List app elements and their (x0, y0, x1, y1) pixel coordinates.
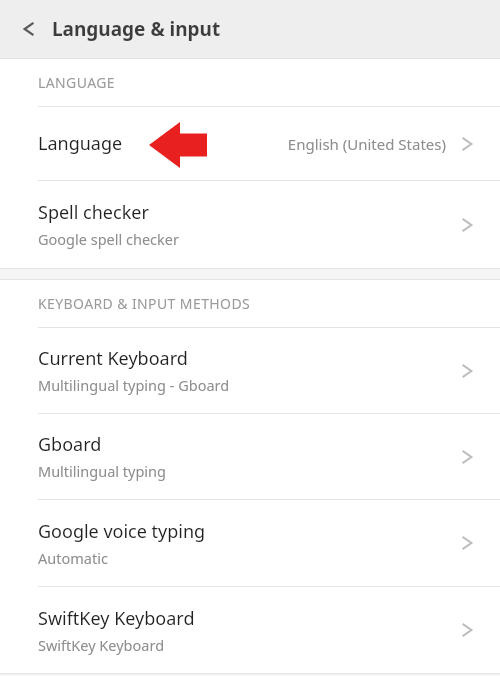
staticText: Gboard (38, 432, 102, 457)
button[interactable]: Current Keyboard (0, 328, 500, 413)
staticText: Language & input (52, 16, 221, 42)
staticText: SwiftKey Keyboard (38, 635, 165, 655)
staticText: Language (38, 131, 123, 156)
button[interactable]: Google voice typing (0, 500, 500, 586)
staticText: Current Keyboard (38, 346, 188, 371)
staticText: Google voice typing (38, 519, 206, 544)
staticText: LANGUAGE (38, 73, 116, 92)
staticText: English (United States) (287, 134, 446, 154)
staticText: Multilingual typing (38, 461, 166, 481)
button[interactable]: Back (12, 12, 46, 46)
button[interactable]: Gboard (0, 414, 500, 499)
staticText: Multilingual typing - Gboard (38, 375, 230, 395)
button[interactable]: Spell checker (0, 181, 500, 268)
staticText: Google spell checker (38, 229, 179, 249)
staticText: Spell checker (38, 200, 149, 225)
staticText: KEYBOARD & INPUT METHODS (38, 294, 251, 313)
staticText: Automatic (38, 548, 108, 568)
button[interactable]: SwiftKey Keyboard (0, 587, 500, 673)
staticText: SwiftKey Keyboard (38, 606, 195, 631)
button[interactable]: Language (0, 107, 500, 180)
